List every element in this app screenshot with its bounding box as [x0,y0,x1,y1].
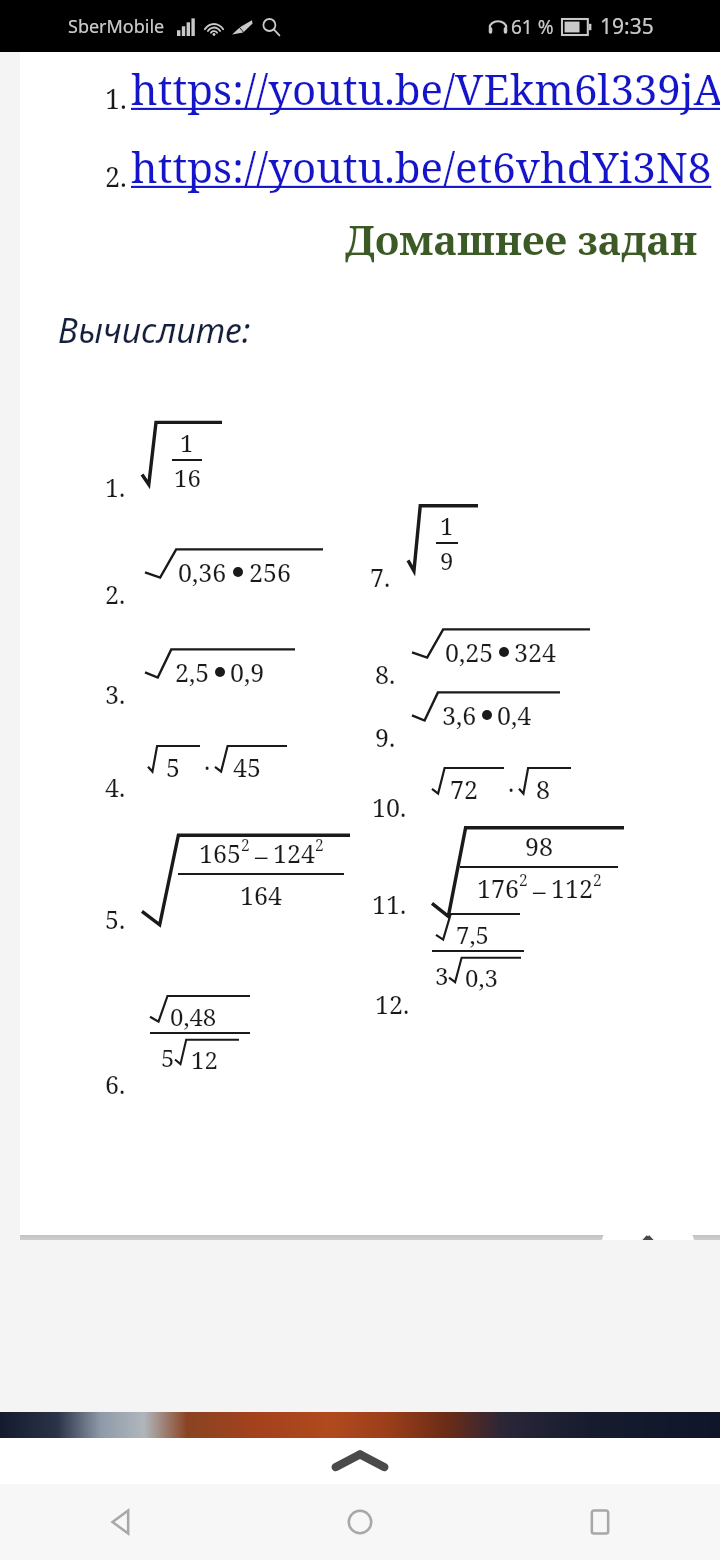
button[interactable] [0,1412,720,1438]
staticText: 5. [105,902,126,936]
staticText: 7. [370,560,391,594]
staticText: 1. [105,470,126,504]
staticText: 2 [593,869,602,890]
button[interactable]: Recent apps [480,1484,720,1560]
staticText: . [204,743,211,777]
staticText: 5 [166,750,180,784]
staticText: 124 [273,836,315,870]
staticText: 0,48 [170,1000,217,1033]
staticText: 16 [174,461,201,494]
staticText: 1 [440,509,454,542]
staticText: 72 [450,772,478,806]
staticText: Вычислите: [58,307,251,353]
staticText: 98 [525,829,553,863]
staticText: 2. [105,158,127,195]
staticText: 176 [477,871,519,905]
staticText: SberMobile [68,14,165,39]
staticText: 7,5 [456,918,489,951]
staticText: 10. [372,790,407,824]
staticText: 3,6 [442,698,477,732]
staticText: 8. [375,657,396,691]
staticText: 165 [199,836,241,870]
staticText: https://youtu.be/et6vhdYi3N8 [131,138,712,195]
button[interactable]: Scroll to top [600,1205,696,1301]
staticText: 9. [375,720,396,754]
staticText: 0,36 [178,555,227,589]
staticText: 19:35 [600,12,654,41]
staticText: 5 [161,1041,175,1074]
staticText: 324 [514,635,556,669]
staticText: 61 % [511,14,554,40]
staticText: 12. [375,987,410,1021]
staticText: 2. [105,577,126,611]
staticText: 0,4 [497,698,532,732]
button[interactable]: Expand [0,1438,720,1484]
staticText: . [508,765,515,799]
staticText: – [533,873,546,907]
staticText: 0,25 [445,635,494,669]
staticText: – [255,838,268,872]
staticText: 8 [536,772,550,806]
staticText: 3. [105,677,126,711]
staticText: 2,5 [175,655,210,689]
staticText: 12 [191,1043,218,1076]
staticText: 1. [105,80,127,117]
staticText: 6. [105,1067,126,1101]
staticText: 9 [440,544,454,577]
button[interactable]: Back [0,1484,240,1560]
staticText: 0,9 [230,655,265,689]
staticText: 2 [315,834,324,855]
staticText: 256 [249,555,291,589]
staticText: 164 [240,878,282,912]
staticText: 3 [435,959,449,992]
staticText: 2 [241,834,250,855]
button[interactable]: 2. [105,138,712,195]
staticText: Домашнее задан [345,212,698,266]
staticText: 0,3 [465,961,498,994]
staticText: 2 [519,869,528,890]
staticText: 4. [105,770,126,804]
staticText: 112 [551,871,593,905]
button[interactable]: 1. [20,52,720,1235]
staticText: 11. [372,887,407,921]
button[interactable]: 1. [105,60,720,117]
staticText: 45 [233,750,261,784]
button[interactable]: Home [240,1484,480,1560]
staticText: 1 [180,426,194,459]
staticText: https://youtu.be/VEkm6l339jA [131,60,720,117]
